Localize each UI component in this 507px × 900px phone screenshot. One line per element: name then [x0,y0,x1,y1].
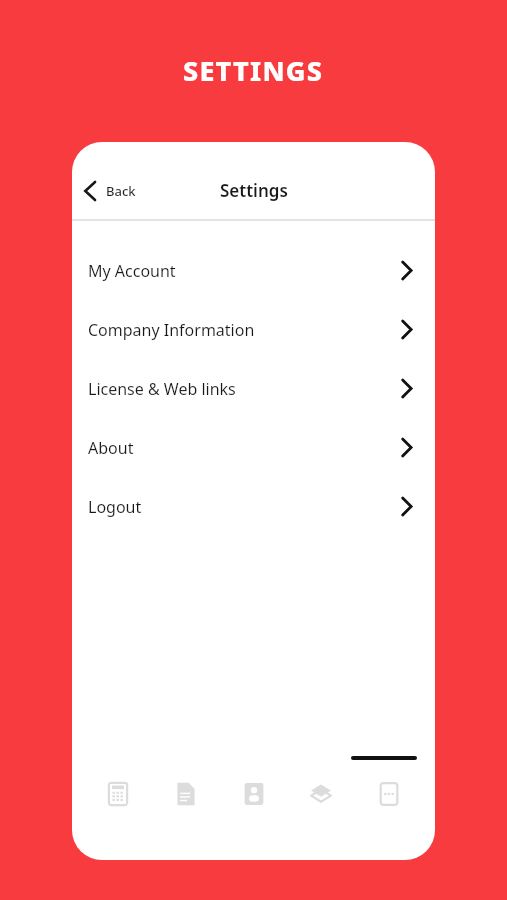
staticText: Logout [88,496,142,518]
button[interactable]: Calculator [96,772,140,816]
staticText: Settings [220,179,288,202]
button[interactable]: Logout [72,477,435,536]
staticText: My Account [88,260,176,282]
button[interactable]: License & Web links [72,359,435,418]
staticText: Company Information [88,319,255,341]
button[interactable]: About [72,418,435,477]
staticText: License & Web links [88,378,236,400]
button[interactable]: My Account [72,241,435,300]
button[interactable]: Contacts [232,772,276,816]
button[interactable]: More [367,772,411,816]
staticText: SETTINGS [183,52,324,89]
staticText: Back [106,182,136,200]
staticText: About [88,437,134,459]
button[interactable]: Layers [299,772,343,816]
button[interactable]: Back [72,176,148,206]
button[interactable]: Company Information [72,300,435,359]
button[interactable]: Documents [164,772,208,816]
